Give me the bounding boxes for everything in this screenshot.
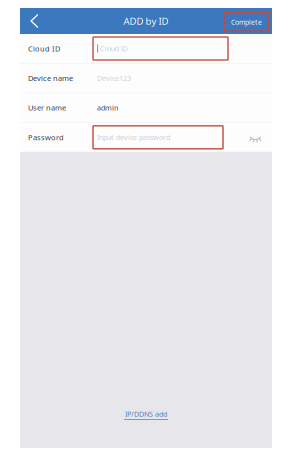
staticText: Cloud ID	[100, 44, 128, 53]
button[interactable]: Cloud ID	[93, 37, 228, 60]
staticText: Complete	[231, 17, 262, 27]
button[interactable]: Complete	[224, 11, 272, 31]
staticText: admin	[97, 103, 118, 113]
staticText: IP/DDNS add	[125, 409, 167, 419]
button[interactable]: Show password	[250, 132, 268, 143]
staticText: Device123	[97, 73, 131, 83]
staticText: Cloud ID	[28, 43, 60, 54]
button[interactable]: Back	[20, 8, 49, 34]
button[interactable]: Input device password	[93, 126, 223, 149]
staticText: Device name	[28, 73, 73, 83]
button[interactable]: Device123	[93, 67, 228, 90]
button[interactable]: IP/DDNS add	[124, 409, 168, 420]
staticText: Input device password	[97, 132, 170, 142]
staticText: ADD by ID	[123, 14, 168, 28]
staticText: User name	[28, 103, 66, 113]
button[interactable]: admin	[93, 96, 228, 119]
staticText: Password	[28, 132, 64, 142]
